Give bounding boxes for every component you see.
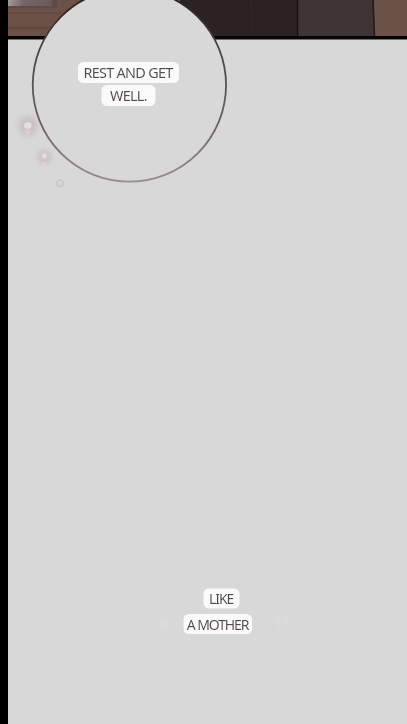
button[interactable] [0, 0, 407, 724]
